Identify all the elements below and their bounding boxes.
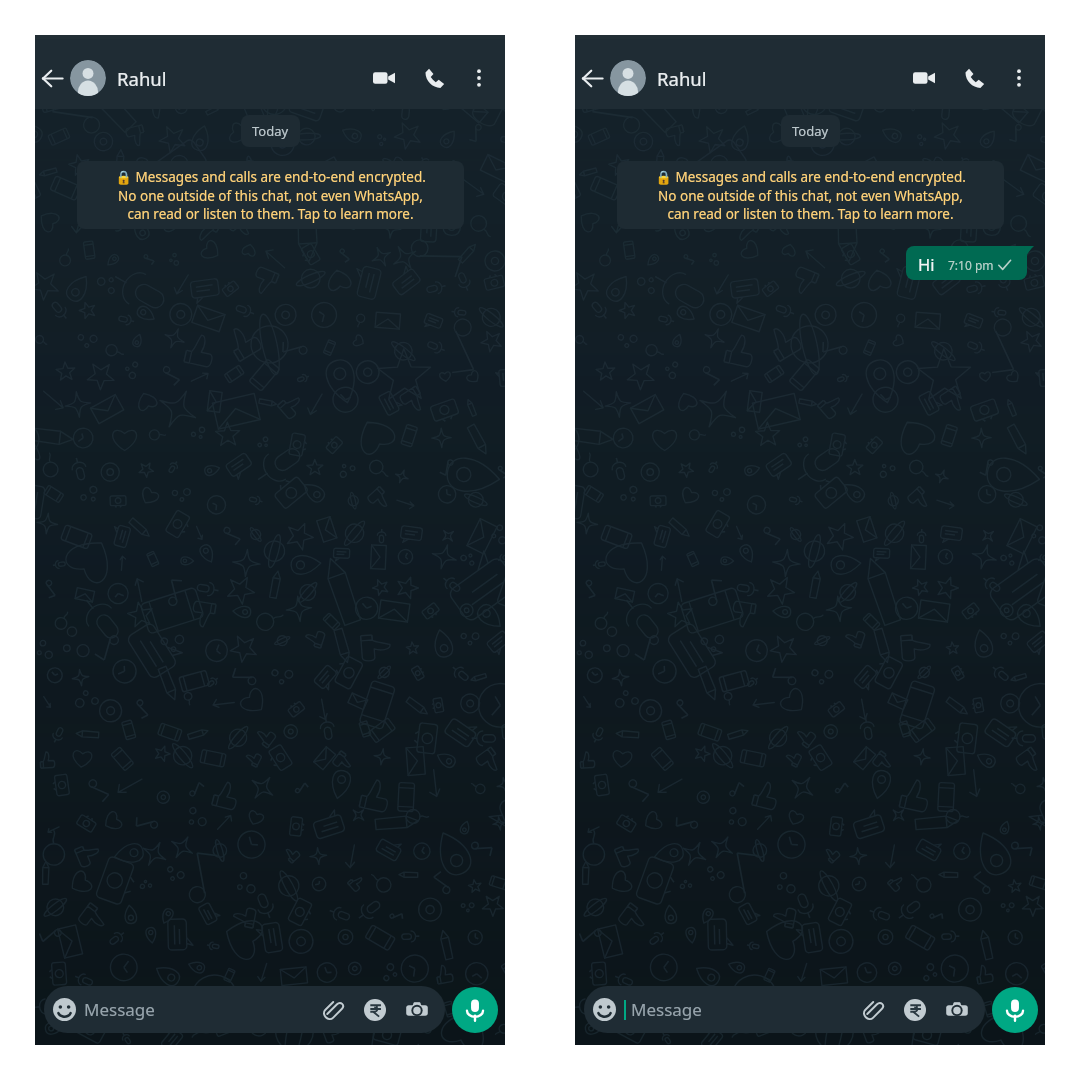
- staticText: Today: [792, 122, 829, 140]
- button[interactable]: Camera: [944, 997, 969, 1022]
- button[interactable]: Attach: [318, 996, 346, 1024]
- button[interactable]: Hi: [906, 246, 1027, 280]
- button[interactable]: Voice call: [413, 57, 455, 99]
- staticText: 🔒 Messages and calls are end-to-end encr…: [87, 168, 454, 222]
- button[interactable]: Payment: [364, 999, 386, 1021]
- button[interactable]: Attach: [858, 996, 886, 1024]
- staticText: 🔒 Messages and calls are end-to-end encr…: [627, 168, 994, 222]
- button[interactable]: Message: [584, 986, 985, 1033]
- button[interactable]: Payment: [904, 999, 926, 1021]
- button[interactable]: Today: [781, 115, 840, 147]
- button[interactable]: More options: [998, 57, 1040, 99]
- button[interactable]: Rahul: [70, 52, 167, 104]
- button[interactable]: Today: [241, 115, 300, 147]
- button[interactable]: Voice call: [953, 57, 995, 99]
- button[interactable]: Video call: [363, 57, 405, 99]
- button[interactable]: 🔒 Messages and calls are end-to-end encr…: [77, 161, 464, 229]
- staticText: Message: [84, 998, 155, 1021]
- button[interactable]: Voice message: [992, 987, 1038, 1033]
- button[interactable]: More options: [458, 57, 500, 99]
- button[interactable]: 🔒 Messages and calls are end-to-end encr…: [617, 161, 1004, 229]
- button[interactable]: Camera: [404, 997, 429, 1022]
- button[interactable]: Voice message: [452, 987, 498, 1033]
- button[interactable]: Back: [575, 61, 609, 95]
- button[interactable]: Rahul: [610, 52, 707, 104]
- staticText: Rahul: [117, 66, 167, 91]
- button[interactable]: Back: [35, 61, 69, 95]
- button[interactable]: Video call: [903, 57, 945, 99]
- staticText: Hi: [918, 253, 935, 275]
- button[interactable]: Message: [44, 986, 445, 1033]
- staticText: 7:10 pm: [948, 257, 994, 273]
- staticText: Message: [631, 998, 702, 1021]
- staticText: Today: [252, 122, 289, 140]
- staticText: Rahul: [657, 66, 707, 91]
